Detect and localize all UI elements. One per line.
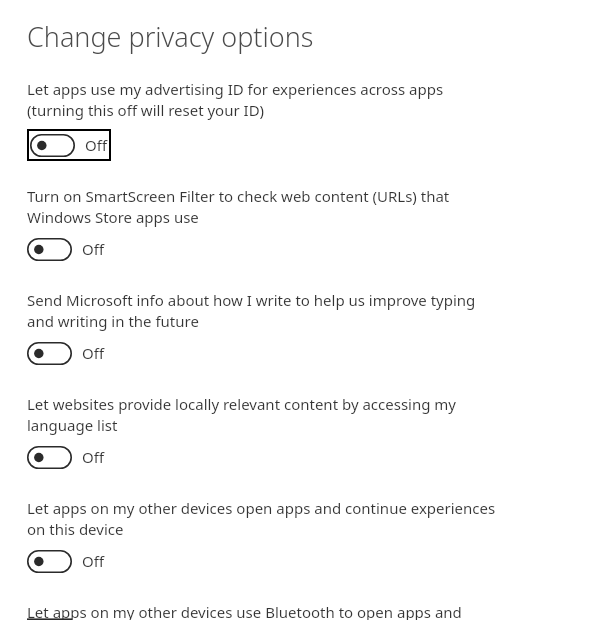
staticText: Off [82, 447, 105, 467]
staticText: Turn on SmartScreen Filter to check web … [27, 186, 497, 228]
button[interactable]: Off [27, 129, 111, 161]
staticText: Off [82, 239, 105, 259]
button[interactable]: Toggle off [27, 236, 111, 262]
staticText: Let apps on my other devices use Bluetoo… [27, 602, 497, 620]
staticText: Send Microsoft info about how I write to… [27, 290, 497, 332]
staticText: Let apps on my other devices open apps a… [27, 498, 497, 540]
staticText: Let websites provide locally relevant co… [27, 394, 497, 436]
staticText: Let apps use my advertising ID for exper… [27, 79, 497, 121]
staticText: Off [85, 135, 108, 155]
staticText: Off [82, 551, 105, 571]
staticText: Off [82, 343, 105, 363]
button[interactable]: Toggle off [27, 548, 111, 574]
staticText: Change privacy options [27, 18, 314, 55]
button[interactable]: Toggle off [27, 340, 111, 366]
button[interactable]: Toggle off [27, 444, 111, 470]
